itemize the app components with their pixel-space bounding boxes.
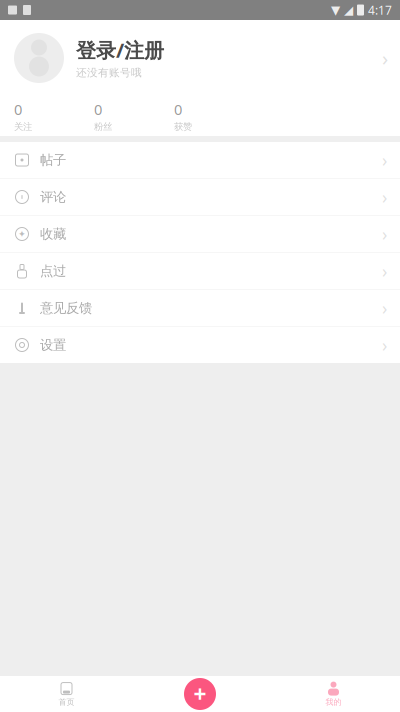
- button[interactable]: 点过: [0, 253, 400, 289]
- staticText: ›: [382, 45, 388, 71]
- staticText: 关注: [14, 121, 32, 132]
- staticText: ›: [382, 222, 387, 245]
- staticText: 粉丝: [94, 121, 112, 132]
- staticText: ›: [382, 259, 387, 282]
- staticText: 设置: [40, 337, 66, 353]
- staticText: ◢: [344, 3, 353, 17]
- button[interactable]: 设置: [0, 327, 400, 363]
- button[interactable]: 0: [160, 96, 240, 136]
- button[interactable]: 帖子: [0, 142, 400, 178]
- staticText: 0: [174, 99, 182, 119]
- staticText: 0: [94, 99, 102, 119]
- staticText: 首页: [58, 697, 74, 707]
- staticText: 意见反馈: [40, 300, 92, 316]
- staticText: 获赞: [174, 121, 192, 132]
- staticText: ▼: [331, 3, 340, 17]
- button[interactable]: ✦: [0, 216, 400, 252]
- button[interactable]: 0: [80, 96, 160, 136]
- button[interactable]: 评论: [0, 179, 400, 215]
- staticText: 收藏: [40, 226, 66, 242]
- staticText: 4:17: [368, 2, 392, 18]
- button[interactable]: Add post: [182, 676, 218, 712]
- staticText: ›: [382, 148, 387, 171]
- button[interactable]: 我的: [267, 676, 400, 712]
- staticText: 登录/注册: [76, 37, 164, 63]
- staticText: ›: [382, 185, 387, 208]
- button[interactable]: 0: [0, 96, 80, 136]
- button[interactable]: 意见反馈: [0, 290, 400, 326]
- staticText: 0: [14, 99, 22, 119]
- button[interactable]: 登录/注册: [0, 20, 400, 96]
- button[interactable]: 首页: [0, 676, 133, 712]
- staticText: ›: [382, 333, 387, 356]
- staticText: 还没有账号哦: [76, 66, 142, 79]
- staticText: 帖子: [40, 152, 66, 168]
- staticText: 我的: [325, 697, 341, 707]
- staticText: ›: [382, 296, 387, 319]
- staticText: 评论: [40, 189, 66, 205]
- staticText: 点过: [40, 263, 66, 279]
- staticText: ✦: [18, 229, 26, 239]
- button[interactable]: Add: [133, 676, 267, 712]
- staticText: +: [193, 679, 206, 709]
